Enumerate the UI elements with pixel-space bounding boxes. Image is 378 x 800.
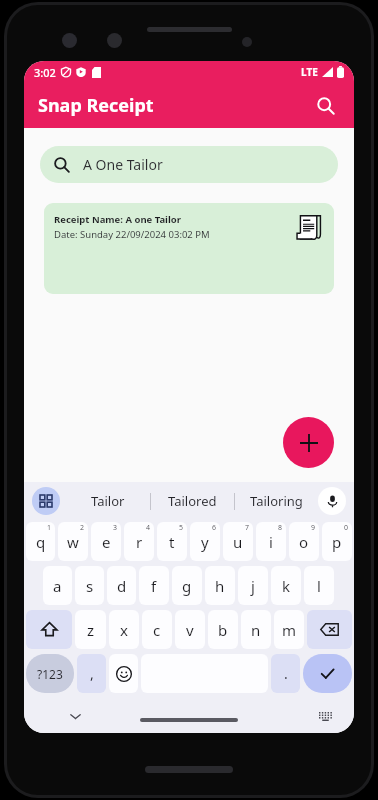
staticText: m (282, 620, 297, 640)
staticText: u (233, 532, 243, 552)
staticText: e (102, 532, 111, 552)
staticText: h (215, 576, 225, 596)
button[interactable]: n (241, 610, 271, 649)
staticText: l (317, 576, 321, 596)
staticText: r (136, 532, 143, 552)
staticText: d (117, 576, 127, 596)
button[interactable]: A One Tailor (40, 146, 338, 183)
staticText: 4 (146, 523, 151, 533)
button[interactable]: Receipt Name: A one Tailor (44, 203, 334, 294)
button[interactable]: z (75, 610, 106, 649)
button[interactable]: Keyboard options (32, 487, 60, 515)
staticText: Tailoring (250, 492, 303, 510)
button[interactable]: Shift (26, 610, 72, 649)
button[interactable]: a (43, 566, 72, 605)
staticText: 1 (47, 523, 52, 533)
button[interactable]: s (75, 566, 104, 605)
button[interactable]: j (238, 566, 268, 605)
staticText: Tailored (168, 492, 217, 510)
button[interactable]: v (175, 610, 205, 649)
staticText: v (186, 620, 194, 640)
button[interactable]: q (26, 522, 55, 561)
staticText: o (299, 532, 309, 552)
staticText: b (218, 620, 228, 640)
button[interactable]: g (172, 566, 202, 605)
staticText: 5 (179, 523, 184, 533)
button[interactable]: x (109, 610, 139, 649)
staticText: ?123 (37, 666, 63, 682)
button[interactable]: u (223, 522, 253, 561)
button[interactable]: c (142, 610, 172, 649)
staticText: t (169, 532, 175, 552)
staticText: q (36, 532, 46, 552)
staticText: i (269, 532, 273, 552)
staticText: g (182, 576, 192, 596)
button[interactable]: . (271, 654, 300, 693)
button[interactable]: h (205, 566, 235, 605)
staticText: 8 (278, 523, 283, 533)
staticText: 3 (113, 523, 118, 533)
staticText: n (251, 620, 261, 640)
staticText: a (53, 576, 62, 596)
staticText: Tailor (91, 492, 125, 510)
staticText: z (87, 620, 95, 640)
button[interactable]: o (289, 522, 319, 561)
button[interactable]: ?123 (26, 654, 74, 693)
button[interactable]: i (256, 522, 286, 561)
button[interactable]: Backspace (307, 610, 352, 649)
button[interactable]: Voice input (318, 487, 346, 515)
button[interactable]: Tailoring (235, 482, 318, 520)
button[interactable]: m (274, 610, 304, 649)
staticText: x (120, 620, 128, 640)
button[interactable]: Change keyboard (312, 703, 338, 729)
button[interactable]: b (208, 610, 238, 649)
button[interactable]: d (107, 566, 136, 605)
staticText: j (251, 576, 255, 596)
staticText: Receipt Name: A one Tailor (54, 213, 181, 226)
button[interactable]: y (190, 522, 220, 561)
button[interactable]: p (322, 522, 352, 561)
staticText: k (282, 576, 291, 596)
button[interactable]: r (124, 522, 154, 561)
button[interactable]: e (91, 522, 121, 561)
staticText: 7 (245, 523, 250, 533)
button[interactable]: Emoji (109, 654, 138, 693)
button[interactable]: k (271, 566, 301, 605)
staticText: A One Tailor (83, 155, 163, 174)
button[interactable]: Add receipt (283, 417, 334, 468)
button[interactable]: Tailor (66, 482, 150, 520)
staticText: f (151, 576, 157, 596)
staticText: c (153, 620, 161, 640)
staticText: Snap Receipt (38, 93, 154, 118)
button[interactable]: Search (310, 90, 342, 122)
button[interactable]: Tailored (151, 482, 234, 520)
button[interactable]: l (304, 566, 334, 605)
staticText: , (90, 664, 94, 683)
staticText: 2 (80, 523, 85, 533)
staticText: 3:02 (34, 65, 56, 80)
staticText: Date: Sunday 22/09/2024 03:02 PM (54, 228, 210, 241)
staticText: w (67, 532, 79, 552)
staticText: LTE (301, 65, 318, 79)
staticText: 0 (344, 523, 349, 533)
staticText: 9 (311, 523, 316, 533)
staticText: . (284, 664, 288, 683)
staticText: s (86, 576, 94, 596)
staticText: 6 (212, 523, 217, 533)
button[interactable]: Enter (303, 654, 352, 693)
button[interactable]: , (77, 654, 106, 693)
staticText: y (201, 532, 209, 552)
button[interactable]: f (139, 566, 169, 605)
staticText: p (332, 532, 342, 552)
button[interactable]: Hide keyboard (62, 703, 88, 729)
button[interactable]: t (157, 522, 187, 561)
button[interactable]: w (58, 522, 88, 561)
